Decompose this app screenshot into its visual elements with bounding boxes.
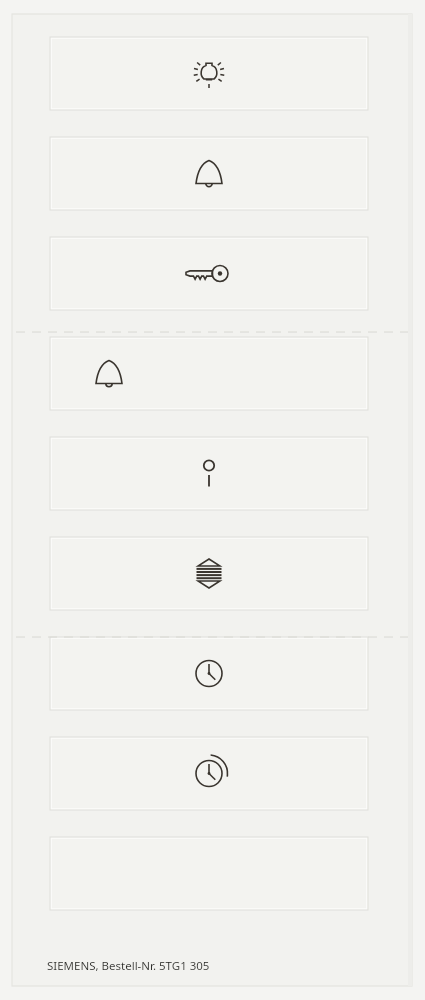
button[interactable]: Timer [50, 637, 368, 710]
button[interactable]: Bell [50, 137, 368, 210]
staticText: SIEMENS, Bestell-Nr. 5TG1 305 [47, 958, 210, 974]
button[interactable]: Blinds [50, 537, 368, 610]
button[interactable]: Timer clock [50, 737, 368, 810]
button[interactable]: Key [50, 237, 368, 310]
button[interactable]: SIEMENS, Bestell-Nr. 5TG1 305 [47, 958, 210, 974]
button[interactable]: Lamp [50, 437, 368, 510]
button[interactable]: Light [50, 37, 368, 110]
button[interactable]: Bell [50, 337, 368, 410]
